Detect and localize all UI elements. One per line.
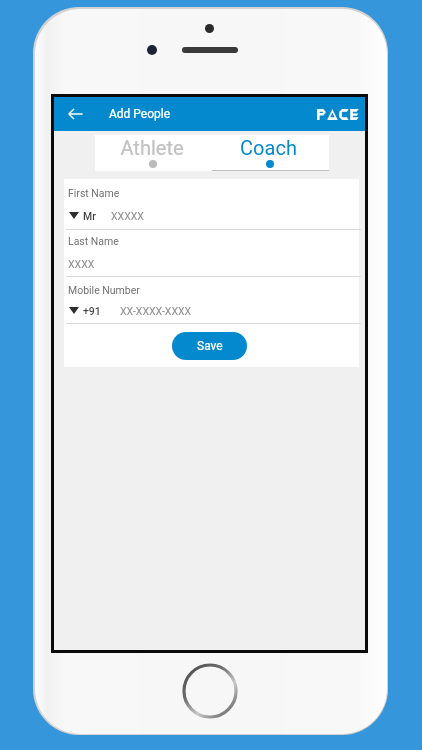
staticText: Add People	[109, 107, 171, 121]
staticText: XXXX	[68, 258, 95, 270]
staticText: Save	[197, 339, 223, 353]
button[interactable]: Coach	[212, 135, 329, 171]
button[interactable]: Back	[62, 100, 88, 128]
staticText: Mobile Number	[68, 284, 140, 296]
staticText: Last Name	[68, 235, 119, 247]
staticText: First Name	[68, 187, 120, 199]
button[interactable]: PACE	[317, 109, 358, 120]
button[interactable]: Athlete	[95, 135, 212, 171]
staticText: +91	[83, 305, 101, 315]
staticText: Coach	[240, 136, 297, 159]
staticText: Mr	[83, 210, 96, 220]
staticText: Athlete	[120, 136, 184, 159]
staticText: XX-XXXX-XXXX	[120, 305, 192, 315]
button[interactable]: Save	[172, 332, 247, 360]
staticText: XXXXX	[111, 210, 144, 220]
